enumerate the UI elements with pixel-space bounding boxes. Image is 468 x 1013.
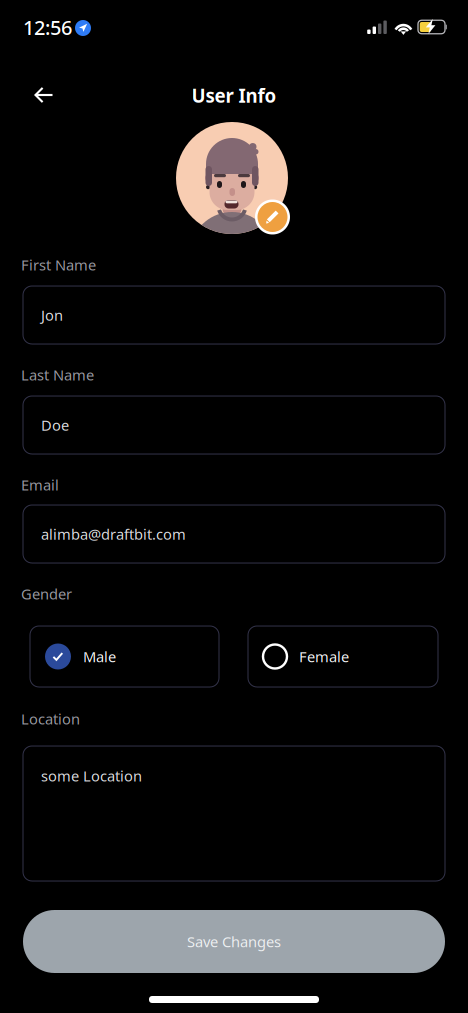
- button[interactable]: alimba@draftbit.com: [0, 0, 422, 58]
- staticText: Female: [299, 647, 349, 666]
- staticText: Male: [83, 647, 116, 666]
- staticText: First Name: [21, 255, 96, 274]
- button[interactable]: Save Changes: [0, 0, 422, 63]
- staticText: Gender: [21, 584, 72, 603]
- button[interactable]: Doe: [0, 0, 422, 58]
- staticText: Doe: [41, 415, 69, 435]
- button[interactable]: Jon: [0, 0, 422, 58]
- staticText: Save Changes: [187, 932, 281, 951]
- staticText: Email: [21, 475, 59, 494]
- staticText: User Info: [191, 83, 276, 108]
- staticText: Location: [21, 709, 80, 728]
- button[interactable]: Female: [0, 0, 190, 61]
- staticText: some Location: [41, 766, 142, 785]
- button[interactable]: Edit profile photo: [0, 0, 114, 117]
- staticText: alimba@draftbit.com: [41, 524, 186, 544]
- button[interactable]: some Location: [0, 0, 422, 135]
- button[interactable]: Back: [0, 0, 44, 40]
- staticText: 12:56: [23, 14, 72, 41]
- staticText: Jon: [41, 305, 63, 325]
- button[interactable]: Male: [0, 0, 189, 61]
- staticText: Last Name: [21, 365, 94, 384]
